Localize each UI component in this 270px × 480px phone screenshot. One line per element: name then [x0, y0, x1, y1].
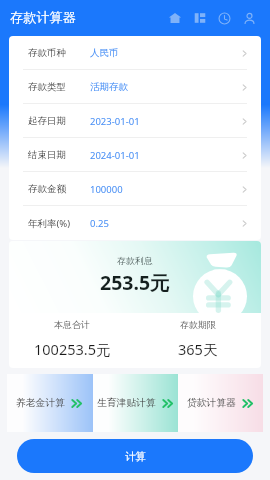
staticText: 100253.5元	[34, 339, 111, 359]
staticText: 存款计算器	[10, 9, 76, 26]
staticText: 养老金计算	[16, 397, 65, 409]
button[interactable]: 起存日期	[9, 104, 261, 138]
staticText: 本息合计	[54, 319, 90, 330]
button[interactable]: 养老金计算	[7, 374, 93, 432]
button[interactable]: 存款金额	[9, 172, 261, 206]
button[interactable]: Home	[168, 11, 182, 25]
staticText: 贷款计算器	[187, 397, 236, 409]
button[interactable]: 贷款计算器	[178, 374, 263, 432]
staticText: 计算	[125, 450, 146, 463]
staticText: 活期存款	[90, 81, 128, 93]
staticText: 年利率(%)	[28, 217, 71, 230]
button[interactable]: 年利率(%)	[9, 206, 261, 240]
staticText: 100000	[90, 183, 123, 196]
button[interactable]: 存款币种	[9, 36, 261, 70]
button[interactable]: 生育津贴计算	[93, 374, 178, 432]
staticText: 0.25	[90, 217, 109, 230]
button[interactable]: Dashboard	[194, 12, 206, 24]
button[interactable]: 计算	[17, 439, 253, 473]
staticText: 存款币种	[28, 47, 66, 59]
staticText: 存款类型	[28, 81, 66, 93]
staticText: 存款期限	[180, 319, 216, 330]
staticText: 存款利息	[117, 255, 153, 266]
staticText: 生育津贴计算	[97, 397, 156, 409]
staticText: 存款金额	[28, 183, 66, 195]
button[interactable]: Profile	[243, 12, 256, 25]
staticText: 起存日期	[28, 115, 66, 127]
staticText: 2023-01-01	[90, 115, 140, 128]
staticText: 253.5元	[100, 269, 170, 296]
staticText: 人民币	[90, 47, 119, 59]
staticText: 2024-01-01	[90, 149, 140, 162]
button[interactable]: 结束日期	[9, 138, 261, 172]
button[interactable]: 存款类型	[9, 70, 261, 104]
button[interactable]: History	[218, 12, 231, 25]
staticText: 365天	[178, 339, 218, 359]
staticText: 结束日期	[28, 149, 66, 161]
